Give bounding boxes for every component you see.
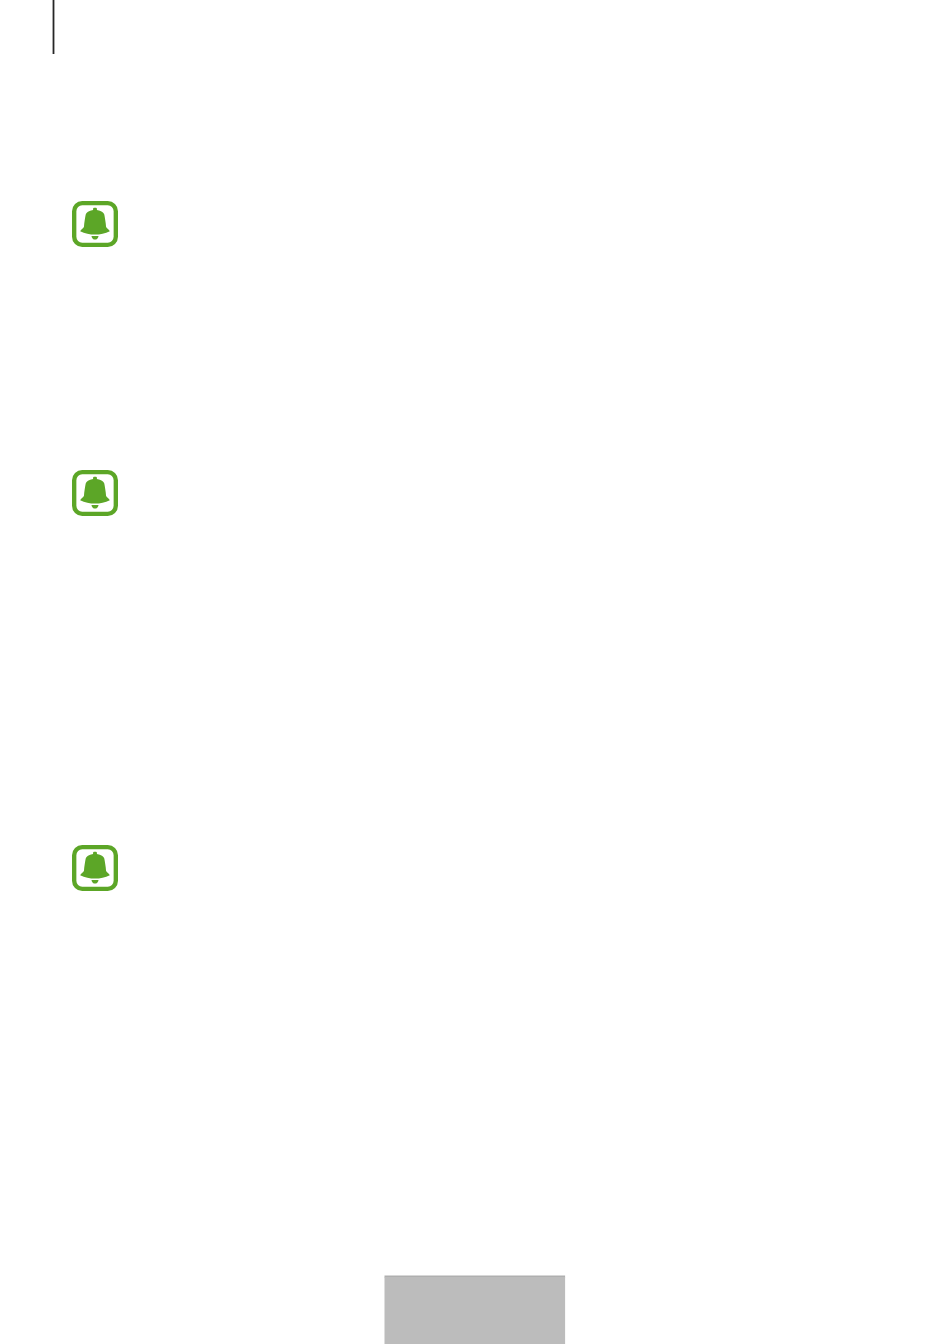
button[interactable]: Notice bbox=[72, 845, 118, 891]
button[interactable]: Notice bbox=[72, 201, 118, 247]
button[interactable]: Notice bbox=[72, 470, 118, 516]
